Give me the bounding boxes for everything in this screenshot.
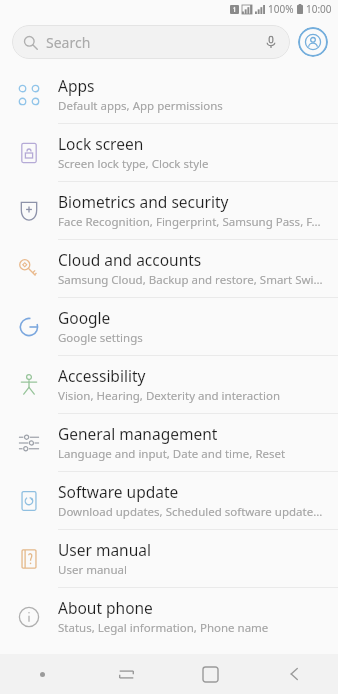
staticText: General management bbox=[58, 423, 218, 444]
button[interactable]: Home bbox=[168, 654, 253, 694]
button[interactable]: Account bbox=[298, 27, 328, 57]
staticText: Google bbox=[58, 307, 111, 328]
button[interactable]: User manual bbox=[0, 530, 338, 588]
button[interactable]: Voice search bbox=[261, 32, 281, 52]
button[interactable]: General management bbox=[0, 414, 338, 472]
button[interactable]: Search bbox=[12, 25, 290, 59]
button[interactable]: Back bbox=[253, 654, 338, 694]
staticText: Language and input, Date and time, Reset bbox=[58, 446, 286, 462]
button[interactable]: Recents bbox=[84, 654, 168, 694]
staticText: Accessibility bbox=[58, 365, 146, 386]
staticText: Samsung Cloud, Backup and restore, Smart… bbox=[58, 272, 323, 288]
staticText: Status, Legal information, Phone name bbox=[58, 620, 269, 636]
staticText: Apps bbox=[58, 75, 95, 96]
staticText: 100% bbox=[268, 2, 294, 16]
staticText: Google settings bbox=[58, 330, 143, 346]
button[interactable]: Software update bbox=[0, 472, 338, 530]
staticText: 10:00 bbox=[306, 2, 332, 16]
staticText: Software update bbox=[58, 481, 179, 502]
staticText: User manual bbox=[58, 562, 127, 578]
staticText: Face Recognition, Fingerprint, Samsung P… bbox=[58, 214, 321, 230]
staticText: About phone bbox=[58, 597, 153, 618]
button[interactable]: Google bbox=[0, 298, 338, 356]
button[interactable]: Show keyboard bbox=[0, 654, 84, 694]
staticText: Biometrics and security bbox=[58, 191, 229, 212]
button[interactable]: Lock screen bbox=[0, 124, 338, 182]
button[interactable]: Cloud and accounts bbox=[0, 240, 338, 298]
button[interactable]: About phone bbox=[0, 588, 338, 645]
staticText: Lock screen bbox=[58, 133, 144, 154]
button[interactable]: Apps bbox=[0, 66, 338, 124]
staticText: User manual bbox=[58, 539, 151, 560]
button[interactable]: Accessibility bbox=[0, 356, 338, 414]
staticText: Cloud and accounts bbox=[58, 249, 202, 270]
staticText: Default apps, App permissions bbox=[58, 98, 223, 114]
staticText: Download updates, Scheduled software upd… bbox=[58, 504, 323, 520]
staticText: Screen lock type, Clock style bbox=[58, 156, 209, 172]
staticText: Search bbox=[46, 33, 91, 52]
button[interactable]: Biometrics and security bbox=[0, 182, 338, 240]
staticText: Vision, Hearing, Dexterity and interacti… bbox=[58, 388, 281, 404]
